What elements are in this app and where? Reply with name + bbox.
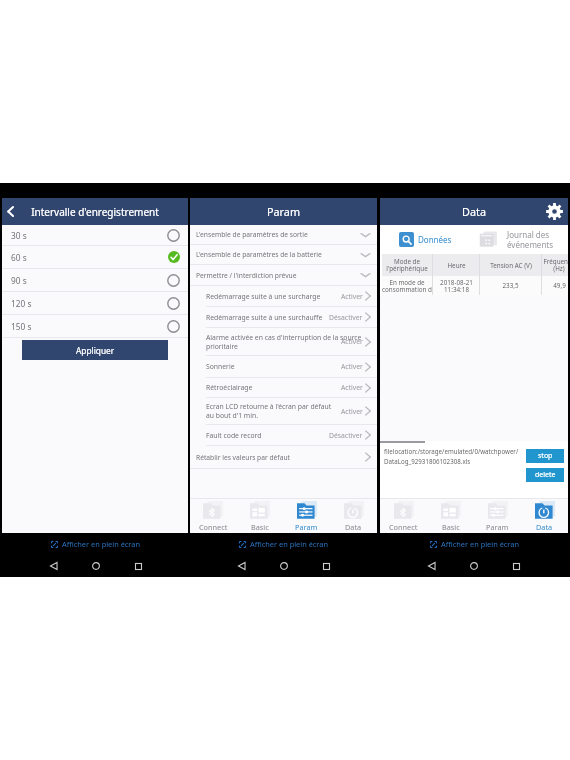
staticText: Activer (341, 383, 363, 392)
button[interactable]: L'ensemble de paramètres de la batterie (190, 245, 377, 264)
staticText: Data (462, 204, 486, 219)
button[interactable]: 30 s (2, 225, 188, 245)
button[interactable]: Recents (505, 555, 527, 577)
button[interactable]: Redémarrage suite à une surchauffe (190, 307, 377, 327)
staticText: Afficher en plein écran (250, 539, 328, 549)
button[interactable]: Param (474, 499, 521, 534)
staticText: 60 s (11, 252, 27, 263)
staticText: Appliquer (76, 345, 115, 356)
staticText: L'ensemble de paramètres de sortie (196, 230, 360, 239)
button[interactable]: Home (463, 555, 485, 577)
button[interactable]: 120 s (2, 292, 188, 314)
staticText: Param (267, 204, 300, 219)
staticText: Param (486, 522, 509, 532)
button[interactable]: Activer (190, 328, 377, 355)
button[interactable]: Recents (127, 555, 149, 577)
staticText: Rétablir les valeurs par défaut (196, 453, 365, 462)
button[interactable]: Basic (236, 499, 283, 534)
staticText: Permettre / l'interdiction prévue (196, 271, 360, 280)
staticText: Data (536, 522, 553, 532)
button[interactable]: Home (273, 555, 295, 577)
button[interactable]: Back (421, 555, 443, 577)
staticText: Fault code record (206, 431, 329, 440)
staticText: L'ensemble de paramètres de la batterie (196, 250, 360, 259)
staticText: Data (345, 522, 362, 532)
staticText: 2018-08-21 11:34:18 (440, 278, 473, 294)
staticText: Connect (199, 522, 228, 532)
staticText: Intervalle d'enregistrement (31, 205, 159, 219)
button[interactable]: 150 s (2, 315, 188, 337)
staticText: En mode de consommation d (382, 278, 432, 294)
button[interactable]: Permettre / l'interdiction prévue (190, 265, 377, 285)
button[interactable]: Data (330, 499, 377, 534)
staticText: Rétroéclairage (206, 383, 341, 392)
staticText: Sonnerie (206, 362, 341, 371)
button[interactable]: Recents (315, 555, 337, 577)
staticText: Désactiver (329, 313, 363, 322)
staticText: Afficher en plein écran (62, 539, 140, 549)
staticText: Basic (442, 522, 460, 532)
staticText: Param (295, 522, 318, 532)
staticText: Fréquence (Hz) (543, 257, 568, 273)
staticText: Activer (341, 407, 363, 416)
button[interactable]: delete (526, 468, 564, 482)
button[interactable]: Journal des événements (479, 225, 565, 254)
button[interactable]: L'ensemble de paramètres de sortie (190, 225, 377, 244)
staticText: Activer (341, 337, 363, 346)
button[interactable]: Settings (543, 198, 565, 225)
staticText: Redémarrage suite à une surchauffe (206, 313, 329, 322)
button[interactable]: stop (526, 449, 564, 463)
staticText: Connect (389, 522, 418, 532)
staticText: Désactiver (329, 431, 363, 440)
button[interactable]: Back (231, 555, 253, 577)
button[interactable]: Param (283, 499, 330, 534)
button[interactable]: Données (399, 225, 461, 254)
staticText: stop (538, 451, 553, 461)
staticText: Basic (251, 522, 269, 532)
button[interactable]: Data (521, 499, 568, 534)
button[interactable]: Basic (427, 499, 474, 534)
staticText: Redémarrage suite à une surcharge (206, 292, 341, 301)
staticText: 120 s (11, 298, 32, 309)
button[interactable]: Ecran LCD retourne à l'écran par défaut … (190, 398, 377, 424)
staticText: Afficher en plein écran (441, 539, 519, 549)
staticText: filelocation:/storage/emulated/0/watchpo… (384, 447, 526, 465)
staticText: Alarme activée en cas d'interruption de … (206, 333, 362, 351)
staticText: Journal des événements (507, 229, 554, 250)
button[interactable]: Redémarrage suite à une surcharge (190, 286, 377, 306)
button[interactable]: Back (43, 555, 65, 577)
button[interactable]: Appliquer (22, 340, 168, 360)
button[interactable]: Fault code record (190, 425, 377, 445)
button[interactable]: Sonnerie (190, 356, 377, 377)
button[interactable]: Rétablir les valeurs par défaut (190, 446, 377, 468)
button[interactable]: Connect (190, 499, 236, 534)
staticText: 90 s (11, 275, 27, 286)
button[interactable]: Connect (380, 499, 427, 534)
button[interactable]: 90 s (2, 269, 188, 291)
button[interactable]: Back (2, 198, 19, 225)
staticText: Activer (341, 362, 363, 371)
button[interactable]: 60 s (2, 246, 188, 268)
staticText: Données (418, 234, 452, 245)
staticText: Heure (447, 261, 466, 270)
button[interactable]: Rétroéclairage (190, 378, 377, 397)
staticText: 233,5 (502, 281, 519, 290)
staticText: Activer (341, 292, 363, 301)
staticText: 30 s (11, 230, 27, 241)
staticText: Ecran LCD retourne à l'écran par défaut … (206, 402, 341, 420)
button[interactable]: Home (85, 555, 107, 577)
staticText: Tension AC (V) (490, 261, 532, 270)
staticText: 150 s (11, 321, 32, 332)
staticText: Mode de l'périphérique (386, 257, 428, 273)
staticText: 49,9 (553, 281, 566, 290)
staticText: delete (535, 470, 556, 480)
